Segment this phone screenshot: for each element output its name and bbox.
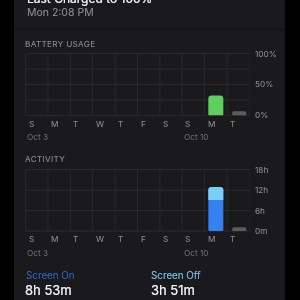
staticText: 8h 53m <box>25 282 72 298</box>
staticText: T <box>118 234 124 244</box>
staticText: 12h <box>255 185 269 195</box>
staticText: 0m <box>255 226 268 236</box>
staticText: Oct 3 <box>27 248 48 258</box>
staticText: Oct 10 <box>184 132 209 142</box>
staticText: M <box>51 119 59 129</box>
staticText: 100% <box>255 49 277 59</box>
staticText: Oct 3 <box>27 132 48 142</box>
staticText: S <box>185 119 191 129</box>
staticText: 50% <box>255 79 274 89</box>
staticText: Oct 10 <box>184 248 209 258</box>
staticText: T <box>118 119 124 129</box>
staticText: W <box>96 234 105 244</box>
button[interactable] <box>14 0 285 28</box>
staticText: Screen On <box>26 270 75 282</box>
staticText: F <box>141 119 146 129</box>
staticText: Screen Off <box>151 270 201 282</box>
staticText: S <box>163 119 169 129</box>
staticText: ACTIVITY <box>25 154 66 164</box>
staticText: M <box>208 234 216 244</box>
staticText: M <box>208 119 216 129</box>
staticText: 0% <box>255 110 269 120</box>
staticText: 6h <box>255 206 265 216</box>
staticText: S <box>185 234 191 244</box>
staticText: Last Charged to 100% <box>27 0 153 6</box>
staticText: S <box>29 119 35 129</box>
button[interactable] <box>145 266 267 300</box>
staticText: Mon 2:08 PM <box>27 6 94 19</box>
staticText: T <box>73 119 79 129</box>
staticText: W <box>96 119 105 129</box>
staticText: M <box>51 234 59 244</box>
staticText: T <box>73 234 79 244</box>
staticText: 3h 51m <box>151 282 195 298</box>
button[interactable] <box>20 266 142 300</box>
staticText: S <box>163 234 169 244</box>
staticText: F <box>141 234 146 244</box>
staticText: S <box>29 234 35 244</box>
staticText: BATTERY USAGE <box>25 39 96 49</box>
staticText: T <box>230 119 236 129</box>
staticText: 18h <box>255 165 269 175</box>
staticText: T <box>230 234 236 244</box>
